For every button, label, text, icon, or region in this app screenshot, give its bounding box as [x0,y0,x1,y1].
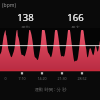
button[interactable]: 21:30 [55,76,69,83]
staticText: 平均 [21,25,30,28]
staticText: 14:20 [37,76,47,81]
staticText: 運動 時間 : 分 秒 [34,86,67,92]
staticText: 最大 [71,25,80,28]
staticText: 166 [67,11,84,24]
button[interactable]: Heart rate chart [0,28,100,71]
button[interactable]: 166 [50,11,100,28]
button[interactable]: 0 [0,76,12,83]
button[interactable]: 運動 時間 : 分 秒 [0,84,100,100]
staticText: 28:52 [77,76,87,81]
button[interactable]: 7:10 [15,76,29,83]
button[interactable]: 14:20 [35,76,49,83]
staticText: 138 [17,11,34,24]
staticText: 7:10 [18,76,26,81]
staticText: (bpm) [2,2,16,9]
staticText: 21:30 [57,76,67,81]
staticText: 0 [4,76,7,81]
button[interactable]: 28:52 [75,76,89,83]
button[interactable]: 138 [0,11,50,28]
